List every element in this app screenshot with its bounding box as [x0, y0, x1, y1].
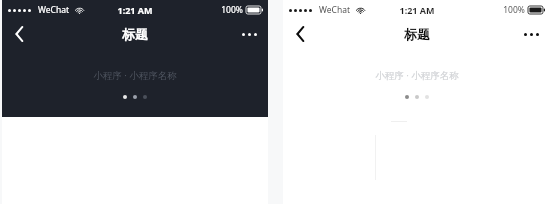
- staticText: WeChat: [319, 4, 350, 16]
- staticText: 标题: [404, 26, 430, 42]
- staticText: 小程序 · 小程序名称: [375, 69, 459, 82]
- staticText: 小程序 · 小程序名称: [93, 69, 177, 82]
- staticText: 标题: [122, 26, 148, 42]
- button[interactable]: Back: [283, 19, 317, 49]
- staticText: 100%: [221, 4, 243, 16]
- staticText: 1:21 AM: [399, 4, 435, 16]
- staticText: WeChat: [38, 4, 69, 16]
- button[interactable]: More options: [230, 19, 268, 49]
- staticText: 100%: [503, 4, 525, 16]
- button[interactable]: Back: [2, 19, 36, 49]
- staticText: 1:21 AM: [117, 4, 153, 16]
- button[interactable]: More options: [512, 19, 550, 49]
